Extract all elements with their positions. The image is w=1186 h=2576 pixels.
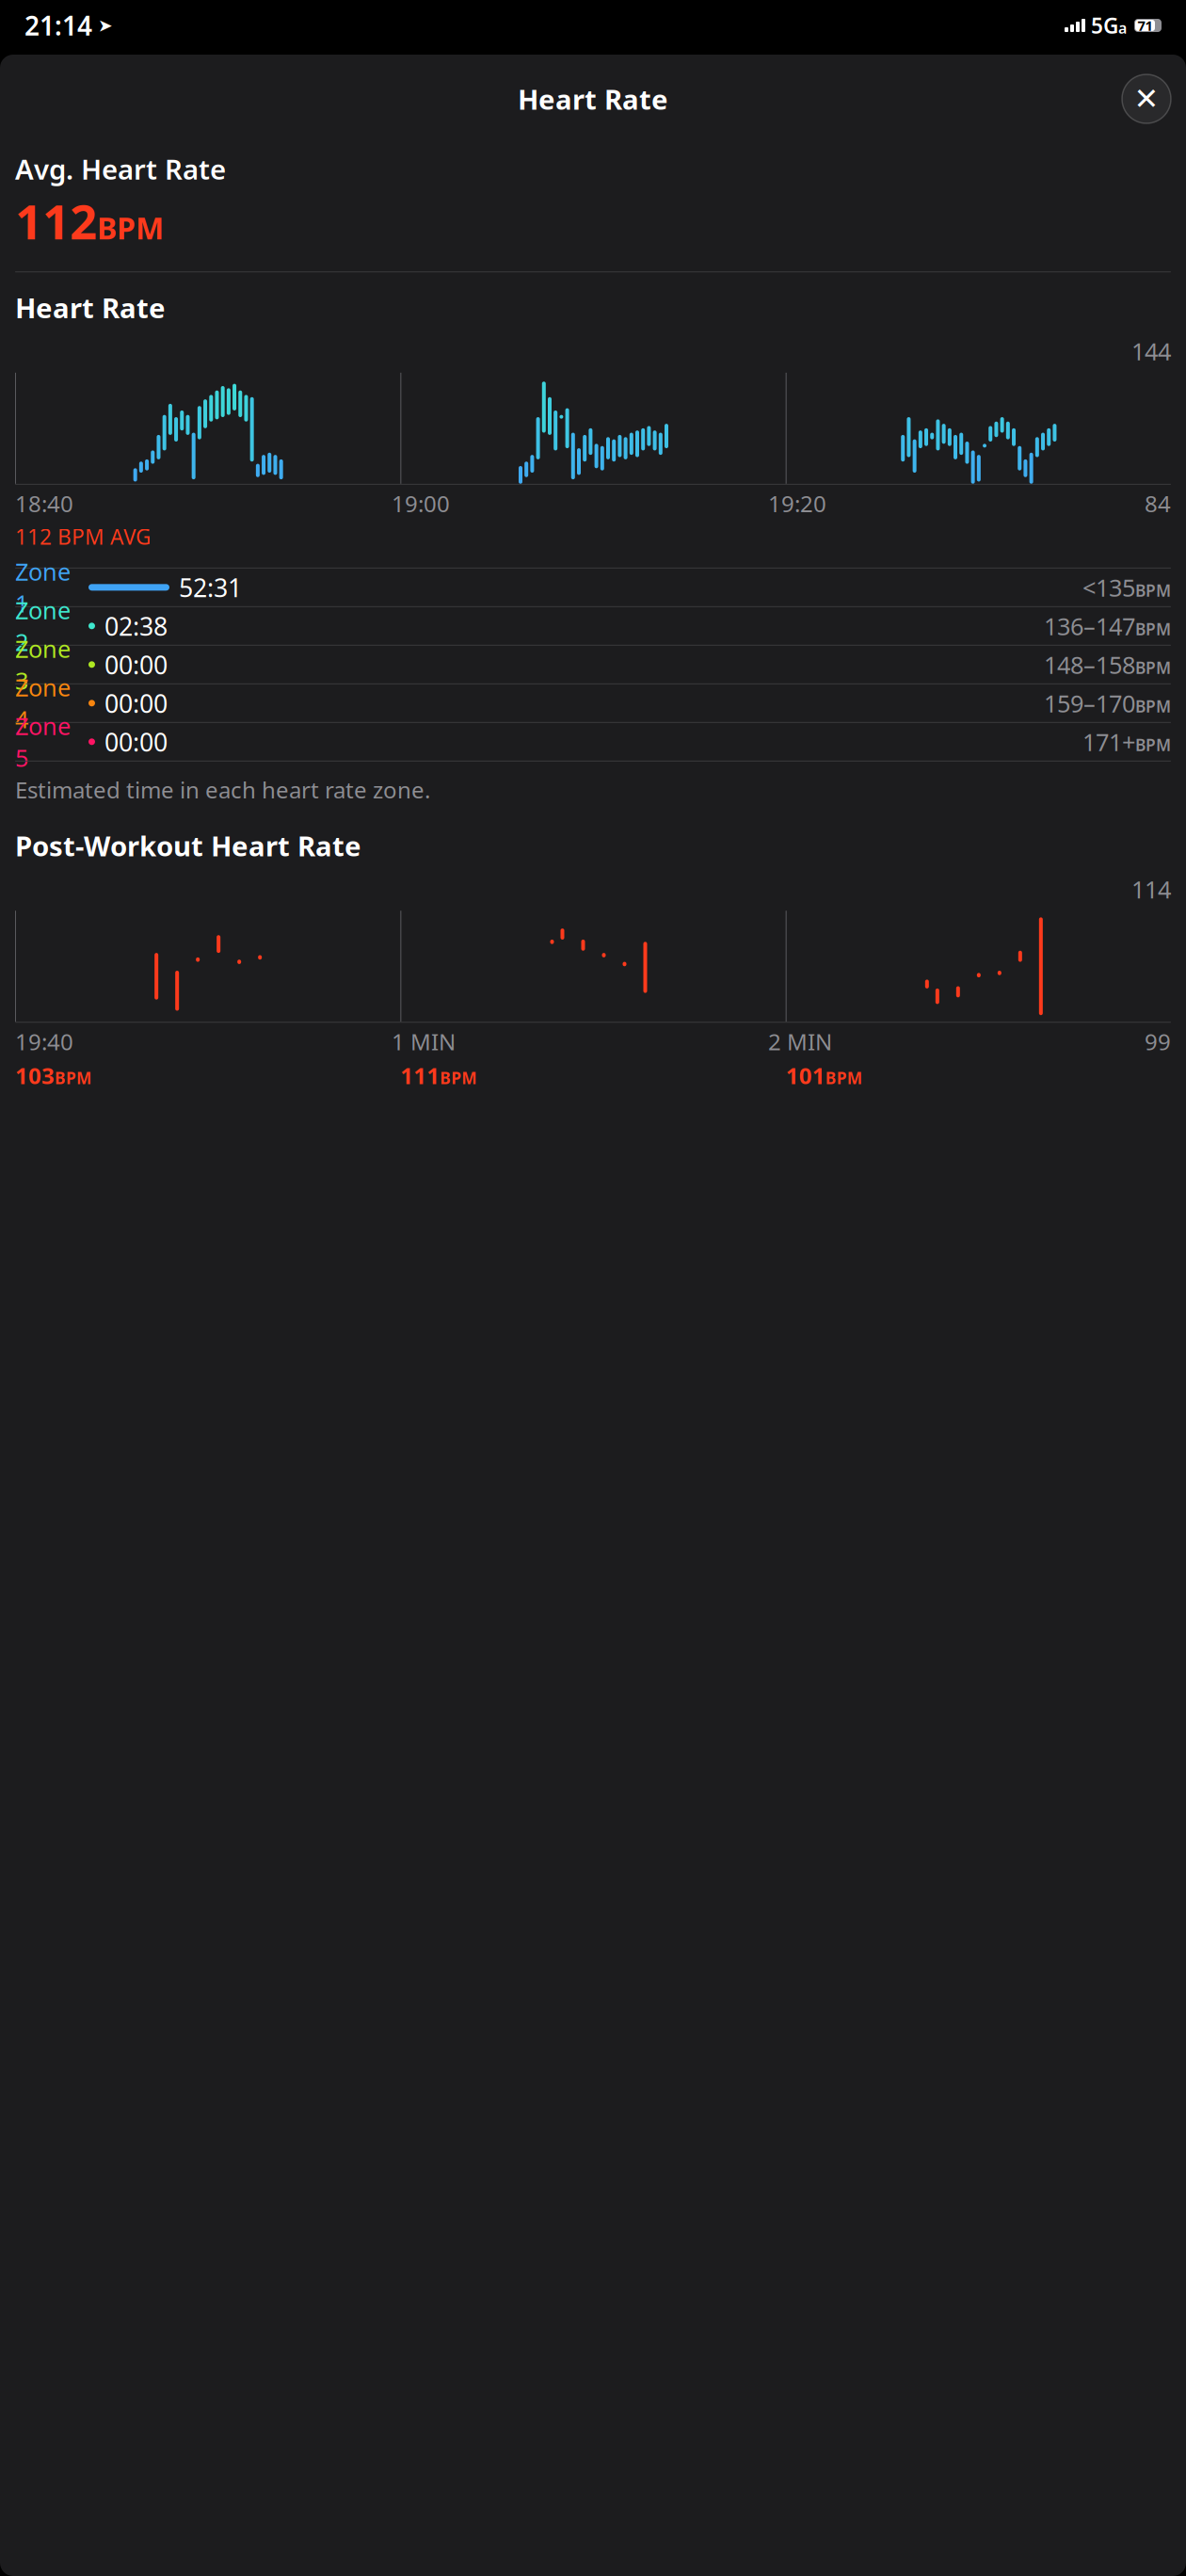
staticText: a <box>1118 18 1127 38</box>
staticText: 2 MIN <box>768 1027 832 1057</box>
staticText: Avg. Heart Rate <box>15 151 226 187</box>
staticText: 171+ <box>1082 726 1135 758</box>
staticText: Estimated time in each heart rate zone. <box>15 775 430 805</box>
staticText: BPM <box>440 1067 477 1089</box>
staticText: 114 <box>1131 873 1171 905</box>
staticText: BPM <box>1135 618 1171 640</box>
staticText: BPM <box>97 208 164 248</box>
staticText: BPM <box>825 1067 862 1089</box>
staticText: Zone 4 <box>15 671 71 735</box>
staticText: 52:31 <box>179 571 242 604</box>
staticText: ✕ <box>1134 82 1159 116</box>
staticText: 19:40 <box>15 1027 73 1057</box>
staticText: Zone 2 <box>15 594 71 658</box>
staticText: BPM <box>1135 695 1171 717</box>
staticText: Zone 3 <box>15 633 71 696</box>
staticText: 02:38 <box>104 609 168 643</box>
staticText: BPM <box>1135 657 1171 678</box>
button[interactable]: Close <box>1120 72 1173 125</box>
staticText: BPM <box>1135 734 1171 755</box>
staticText: ➤ <box>98 15 113 35</box>
staticText: 111 <box>400 1060 440 1090</box>
staticText: 00:00 <box>104 725 168 758</box>
staticText: BPM <box>55 1067 91 1089</box>
button[interactable]: Zone 3 <box>15 646 1171 684</box>
button[interactable]: Zone 5 <box>15 723 1171 762</box>
staticText: <135 <box>1082 572 1135 603</box>
staticText: 21:14 <box>24 8 92 43</box>
staticText: 148–158 <box>1044 649 1135 680</box>
staticText: Heart Rate <box>518 80 668 117</box>
staticText: 103 <box>15 1060 55 1090</box>
staticText: 19:00 <box>392 488 450 518</box>
staticText: 99 <box>1145 1027 1171 1057</box>
staticText: 159–170 <box>1044 687 1135 719</box>
staticText: 19:20 <box>768 488 826 518</box>
staticText: 00:00 <box>104 648 168 681</box>
staticText: 1 MIN <box>392 1027 456 1057</box>
button[interactable]: Zone 4 <box>15 684 1171 723</box>
staticText: 00:00 <box>104 686 168 720</box>
button[interactable]: Zone 1 <box>15 568 1171 607</box>
staticText: 101 <box>786 1060 825 1090</box>
staticText: 71 <box>1138 16 1153 35</box>
staticText: BPM <box>1135 579 1171 601</box>
staticText: 144 <box>1131 335 1171 367</box>
staticText: Zone 1 <box>15 556 71 619</box>
staticText: Post-Workout Heart Rate <box>15 827 361 864</box>
staticText: 84 <box>1145 488 1171 518</box>
staticText: 112 BPM AVG <box>15 522 152 551</box>
staticText: 136–147 <box>1044 610 1135 642</box>
staticText: 18:40 <box>15 488 73 518</box>
staticText: Heart Rate <box>15 289 166 326</box>
staticText: 112 <box>15 189 97 253</box>
staticText: 5G <box>1091 11 1118 40</box>
staticText: Zone 5 <box>15 710 71 773</box>
button[interactable]: Zone 2 <box>15 607 1171 646</box>
